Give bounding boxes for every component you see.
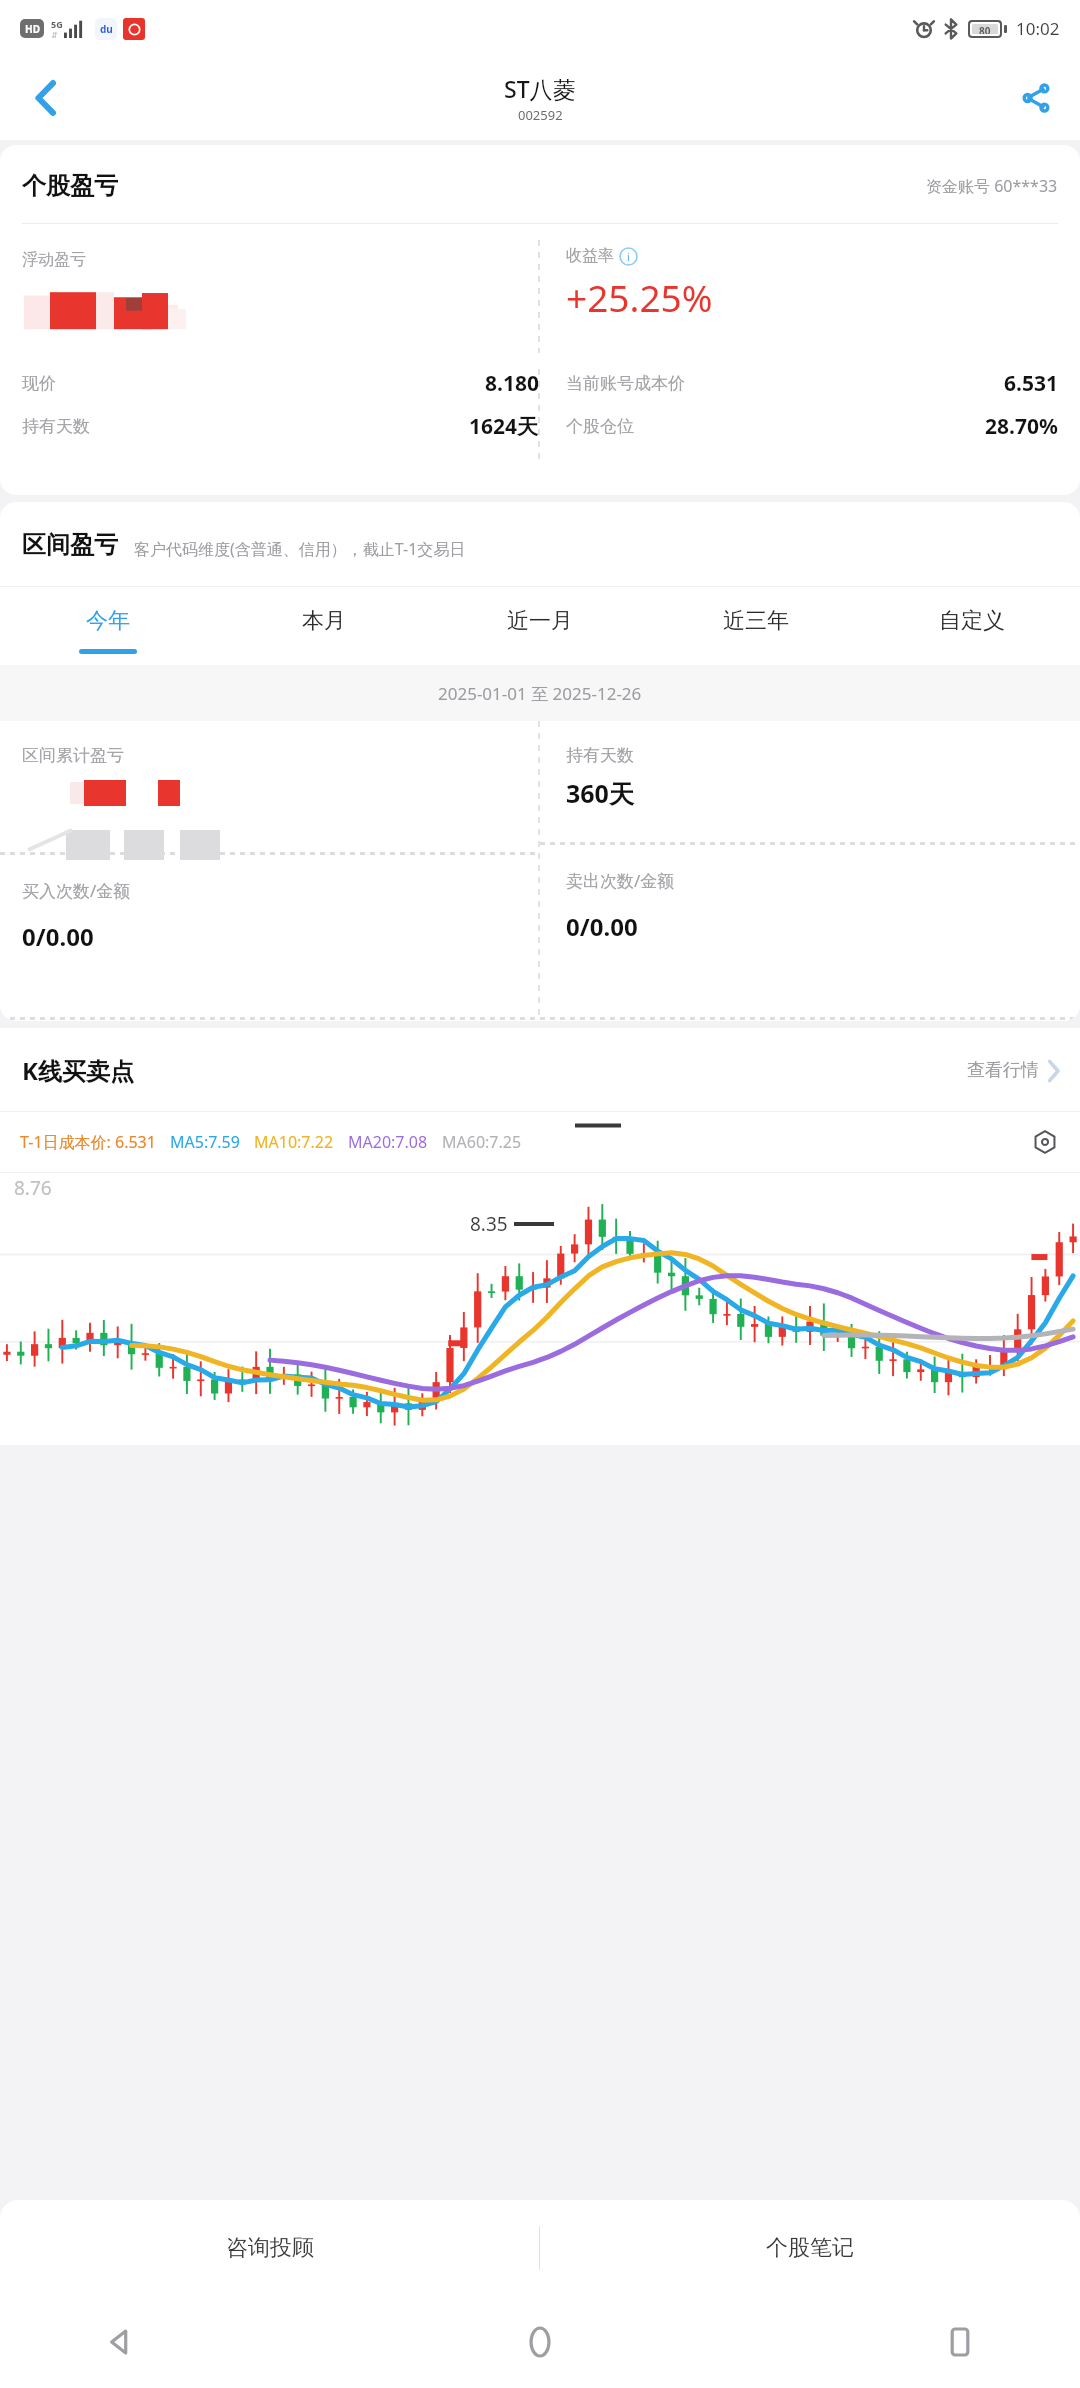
button[interactable]: Share xyxy=(1010,72,1062,124)
staticText: 持有天数 xyxy=(22,416,90,437)
staticText: du xyxy=(100,22,113,36)
staticText: 10:02 xyxy=(1016,17,1060,40)
button[interactable]: 个股笔记 xyxy=(540,2200,1080,2296)
staticText: ST八菱 xyxy=(504,73,576,104)
staticText: 28.70% xyxy=(985,412,1058,441)
staticText: 自定义 xyxy=(939,607,1005,635)
staticText: 0/0.00 xyxy=(566,910,638,943)
staticText: 80 xyxy=(979,24,991,34)
button[interactable]: 自定义 xyxy=(864,587,1080,665)
staticText: 6.531 xyxy=(1004,369,1058,398)
staticText: 买入次数/金额 xyxy=(22,879,131,902)
staticText: 个股仓位 xyxy=(566,416,634,437)
staticText: 近三年 xyxy=(723,607,789,635)
staticText: HD xyxy=(25,22,40,36)
button[interactable]: Home xyxy=(516,2318,564,2366)
staticText: 360天 xyxy=(566,776,634,810)
staticText: 持有天数 xyxy=(566,745,634,766)
staticText: 收益率 xyxy=(566,246,614,266)
staticText: 浮动盈亏 xyxy=(22,250,86,270)
staticText: 区间累计盈亏 xyxy=(22,745,124,766)
button[interactable]: 本月 xyxy=(216,587,432,665)
button[interactable]: Back xyxy=(20,72,72,124)
staticText: MA10:7.22 xyxy=(254,1131,334,1153)
staticText: MA60:7.25 xyxy=(442,1131,522,1153)
button[interactable]: 咨询投顾 xyxy=(0,2200,539,2296)
staticText: 002592 xyxy=(518,106,563,124)
staticText: 1624天 xyxy=(469,412,539,441)
staticText: 个股盈亏 xyxy=(22,171,118,201)
staticText: 资金账号 60***33 xyxy=(926,175,1058,197)
staticText: 近一月 xyxy=(507,607,573,635)
button[interactable]: 近一月 xyxy=(432,587,648,665)
staticText: 当前账号成本价 xyxy=(566,373,685,394)
staticText: +25.25% xyxy=(566,272,713,322)
staticText: ⇵ xyxy=(51,31,58,40)
staticText: K线买卖点 xyxy=(22,1054,134,1087)
staticText: 今年 xyxy=(86,607,130,635)
button[interactable]: K线买卖点 xyxy=(22,1054,1060,1087)
button[interactable]: Info xyxy=(619,247,638,266)
staticText: MA5:7.59 xyxy=(170,1131,240,1153)
staticText: 咨询投顾 xyxy=(226,2234,314,2262)
staticText: 卖出次数/金额 xyxy=(566,869,675,892)
button[interactable]: Recents xyxy=(936,2318,984,2366)
staticText: 8.76 xyxy=(14,1175,52,1201)
staticText: 个股笔记 xyxy=(766,2234,854,2262)
staticText: i xyxy=(627,249,630,264)
staticText: 0/0.00 xyxy=(22,920,94,953)
staticText: 客户代码维度(含普通、信用），截止T-1交易日 xyxy=(134,538,466,560)
staticText: T-1日成本价: 6.531 xyxy=(20,1131,156,1153)
staticText: 区间盈亏 xyxy=(22,530,118,560)
button[interactable]: 近三年 xyxy=(648,587,864,665)
button[interactable]: 今年 xyxy=(0,587,216,665)
staticText: 2025-01-01 至 2025-12-26 xyxy=(438,682,642,705)
staticText: 本月 xyxy=(302,607,346,635)
staticText: 现价 xyxy=(22,373,56,394)
staticText: 8.35 xyxy=(470,1211,508,1237)
button[interactable]: Settings xyxy=(1030,1127,1060,1157)
staticText: 查看行情 xyxy=(967,1059,1039,1082)
button[interactable]: Back xyxy=(96,2318,144,2366)
staticText: 8.180 xyxy=(485,369,539,398)
staticText: MA20:7.08 xyxy=(348,1131,428,1153)
staticText: 5G xyxy=(51,18,63,30)
